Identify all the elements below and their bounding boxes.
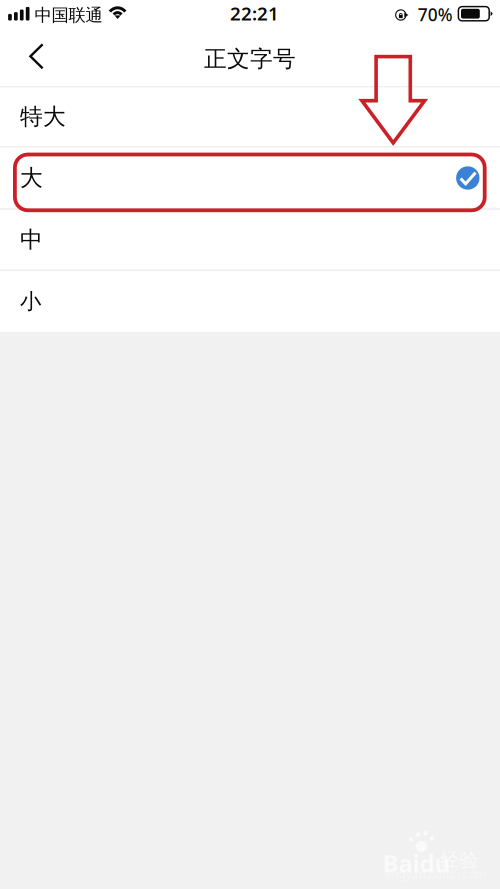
button[interactable]: 特大 [0,87,500,146]
staticText: 中国联通 [35,4,103,26]
staticText: 大 [20,164,43,192]
button[interactable]: 小 [0,271,500,332]
staticText: 70% [418,3,453,26]
staticText: 特大 [20,103,66,131]
staticText: 中 [20,226,43,254]
button[interactable]: 中 [0,210,500,270]
staticText: Baidu [382,847,450,879]
staticText: 22:21 [230,1,279,26]
staticText: 小 [20,288,41,314]
staticText: jingyan.baidu.com [385,866,486,882]
staticText: 经验 [440,848,478,871]
button[interactable]: 大 [0,148,500,208]
button[interactable]: 返回 [0,32,70,86]
staticText: 正文字号 [204,45,296,73]
